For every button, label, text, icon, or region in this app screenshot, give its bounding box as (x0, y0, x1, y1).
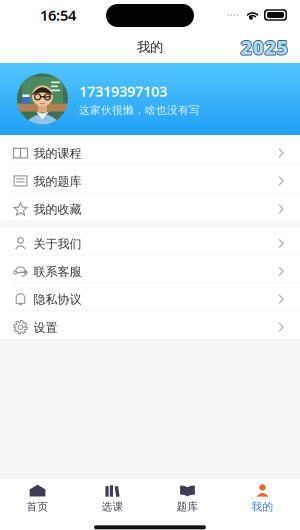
staticText: 2025 (240, 34, 288, 60)
staticText: 我的课程 (33, 146, 81, 161)
staticText: 我的题库 (33, 174, 81, 189)
button[interactable]: 联系客服 (0, 255, 300, 283)
button[interactable]: 首页 (0, 479, 75, 519)
button[interactable]: 我的课程 (0, 137, 300, 165)
staticText: 首页 (26, 500, 48, 513)
button[interactable]: 选课 (75, 479, 150, 519)
staticText: 2025 (240, 34, 288, 60)
staticText: 选课 (101, 500, 123, 513)
staticText: 17319397103 (79, 81, 167, 101)
button[interactable]: 题库 (150, 479, 225, 519)
staticText: 隐私协议 (33, 292, 81, 307)
button[interactable]: 关于我们 (0, 227, 300, 255)
staticText: 我的 (251, 500, 273, 513)
staticText: 设置 (33, 320, 57, 335)
button[interactable]: 隐私协议 (0, 283, 300, 311)
staticText: 联系客服 (33, 264, 81, 279)
button[interactable]: 设置 (0, 311, 300, 339)
button[interactable]: 我的 (225, 479, 300, 519)
staticText: 2025 (240, 33, 288, 60)
button[interactable]: 我的题库 (0, 165, 300, 193)
staticText: 关于我们 (33, 237, 81, 251)
staticText: 2025 (241, 34, 289, 60)
staticText: 这家伙很懒，啥也没有写 (79, 104, 200, 117)
staticText: 我的 (137, 39, 163, 55)
staticText: 16:54 (40, 5, 76, 25)
staticText: 题库 (176, 500, 198, 513)
button[interactable]: 我的收藏 (0, 193, 300, 220)
staticText: 我的收藏 (33, 202, 81, 217)
staticText: 2025 (240, 34, 288, 61)
